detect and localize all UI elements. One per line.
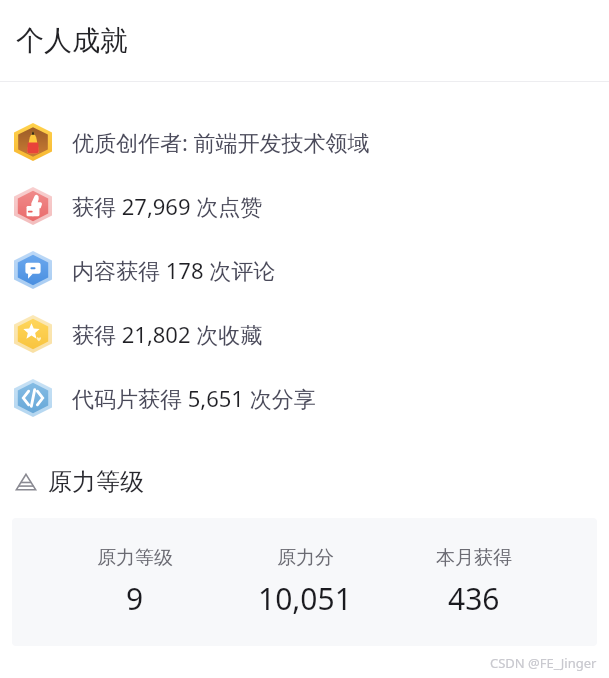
button[interactable]: 获得 21,802 次收藏 <box>0 302 609 366</box>
staticText: 436 <box>448 578 500 619</box>
button[interactable]: 内容获得 178 次评论 <box>0 238 609 302</box>
staticText: 内容获得 178 次评论 <box>72 255 276 285</box>
staticText: CSDN @FE_Jinger <box>490 654 597 672</box>
staticText: 获得 27,969 次点赞 <box>72 191 263 221</box>
staticText: 获得 21,802 次收藏 <box>72 319 263 349</box>
button[interactable]: 代码片获得 5,651 次分享 <box>0 366 609 430</box>
staticText: 代码片获得 5,651 次分享 <box>72 383 316 413</box>
staticText: 优质创作者: 前端开发技术领域 <box>72 127 370 157</box>
button[interactable]: 获得 27,969 次点赞 <box>0 174 609 238</box>
staticText: 9 <box>126 578 144 619</box>
other: 原力等级图标 <box>14 470 38 494</box>
staticText: 本月获得 <box>436 546 512 570</box>
staticText: 10,051 <box>258 578 352 619</box>
staticText: 原力分 <box>277 546 334 570</box>
staticText: 原力等级 <box>97 546 173 570</box>
staticText: 原力等级 <box>48 467 144 497</box>
button[interactable]: 原力等级 <box>12 518 597 646</box>
staticText: 个人成就 <box>16 23 128 58</box>
button[interactable]: 优质创作者: 前端开发技术领域 <box>0 110 609 174</box>
